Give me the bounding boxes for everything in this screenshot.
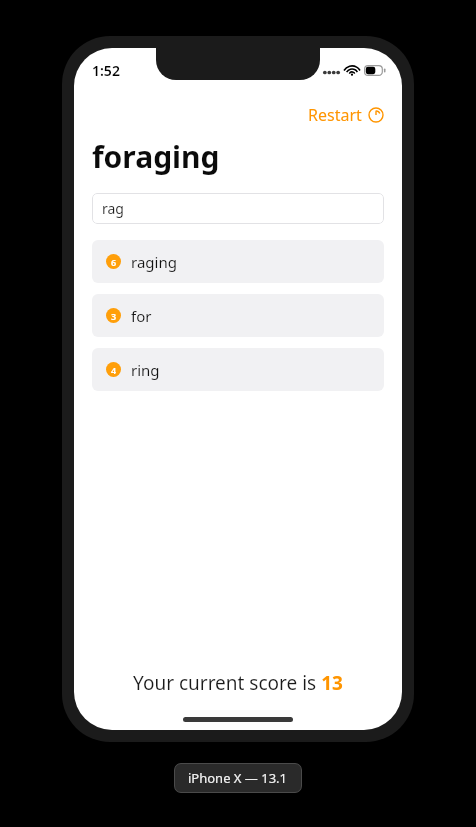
staticText: rag [102, 199, 124, 218]
staticText: foraging [92, 136, 220, 177]
staticText: Restart [308, 104, 362, 126]
staticText: 6 [111, 256, 117, 268]
staticText: for [131, 306, 152, 326]
button[interactable]: 6 [92, 240, 384, 283]
button[interactable]: Restart [304, 102, 388, 128]
staticText: 1:52 [92, 61, 120, 80]
staticText: Your current score is 13 [133, 670, 343, 696]
staticText: iPhone X — 13.1 [188, 769, 288, 787]
other: Restart [368, 107, 384, 123]
button[interactable]: 3 [92, 294, 384, 337]
button[interactable]: 4 [92, 348, 384, 391]
staticText: 4 [111, 364, 117, 376]
staticText: 3 [111, 310, 117, 322]
staticText: ring [131, 360, 160, 380]
button[interactable]: rag [92, 193, 384, 224]
staticText: raging [131, 252, 177, 272]
